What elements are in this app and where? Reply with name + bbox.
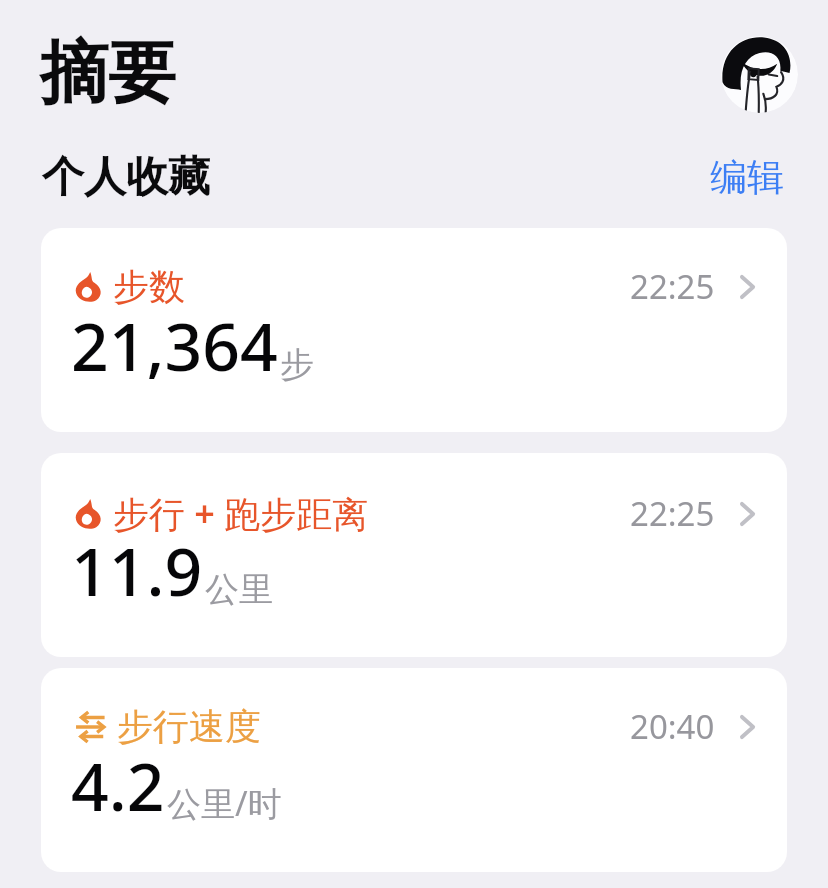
staticText: 公里 <box>205 568 273 611</box>
staticText: 22:25 <box>630 264 715 309</box>
button[interactable]: 步行 + 跑步距离 <box>41 453 787 657</box>
staticText: 11.9 <box>71 525 203 615</box>
staticText: 21,364 <box>71 300 278 390</box>
staticText: 步行速度 <box>117 704 261 749</box>
staticText: 摘要 <box>40 31 176 117</box>
staticText: 4.2 <box>71 740 165 830</box>
staticText: 步行 + 跑步距离 <box>113 489 369 538</box>
staticText: 22:25 <box>630 491 715 536</box>
staticText: 个人收藏 <box>42 151 210 204</box>
button[interactable]: 步行速度 <box>41 668 787 872</box>
staticText: 编辑 <box>710 154 784 201</box>
button[interactable]: Profile <box>721 36 798 113</box>
button[interactable]: 步数 <box>41 228 787 432</box>
staticText: 步数 <box>113 264 185 309</box>
button[interactable]: 编辑 <box>708 150 786 205</box>
staticText: 步 <box>280 343 314 386</box>
staticText: 20:40 <box>630 704 715 749</box>
staticText: 公里/时 <box>167 780 282 826</box>
